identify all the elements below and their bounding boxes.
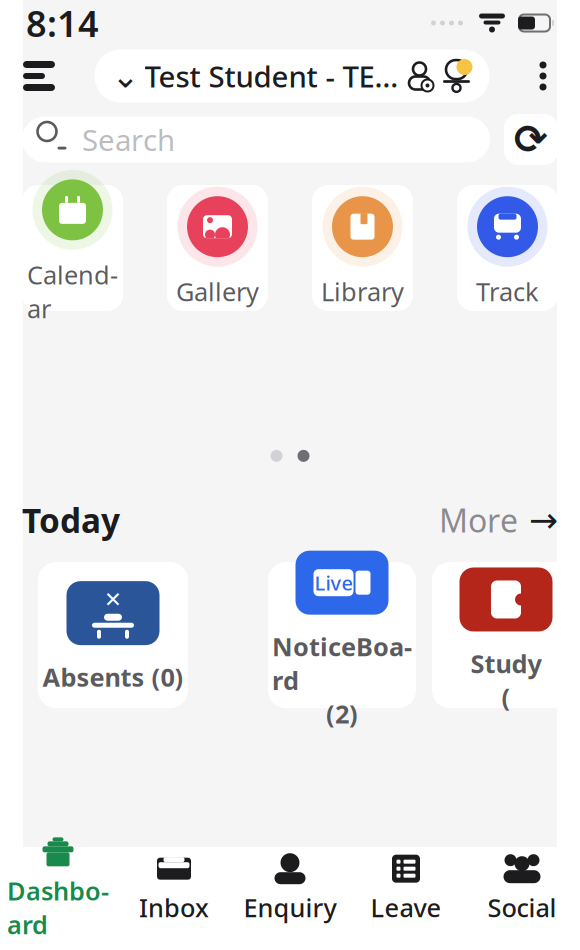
staticText: ⌄ [111,57,139,95]
staticText: Test Student - TE… [144,56,398,95]
button[interactable]: Refresh [504,114,558,165]
button[interactable]: Dashboard [0,831,116,947]
button[interactable]: Search [22,116,490,162]
button[interactable]: Track [457,185,558,311]
button[interactable]: Calendar [22,185,123,311]
staticText: Calendar [27,258,118,325]
button[interactable]: Live [268,562,416,708]
button[interactable]: Enquiry [232,848,348,930]
staticText: NoticeBoard [272,630,412,697]
button[interactable]: More options [522,53,564,99]
staticText: Library [321,275,404,308]
button[interactable]: Social [464,848,580,930]
staticText: Track [476,275,539,308]
staticText: Search [82,120,175,159]
button[interactable]: Gallery [167,185,268,311]
staticText: Study [470,646,541,680]
staticText: Leave [370,891,441,924]
button[interactable]: Notifications [440,59,472,93]
button[interactable]: Leave [348,848,464,930]
staticText: → [529,500,558,540]
staticText: Social [487,891,556,924]
staticText: ⟳ [514,117,548,162]
button[interactable]: Library [312,185,413,311]
button[interactable]: Menu [16,53,62,99]
button[interactable]: Inbox [116,848,232,930]
button[interactable]: Switch student [405,60,433,91]
staticText: More [439,499,518,541]
staticText: Gallery [176,275,259,308]
staticText: Live [314,569,352,596]
staticText: Enquiry [243,891,336,924]
staticText: 8:14 [26,0,99,47]
staticText: (2) [326,697,358,731]
button[interactable]: Study [432,562,580,708]
staticText: Absents (0) [42,660,183,694]
button[interactable]: ⌄ [111,56,398,95]
staticText: Inbox [139,891,209,924]
staticText: Today [22,498,120,542]
staticText: ✕ [104,587,122,612]
staticText: ( [501,680,510,714]
button[interactable]: More [439,499,558,541]
button[interactable]: ✕ [38,562,188,708]
staticText: Dashboard [7,874,109,941]
